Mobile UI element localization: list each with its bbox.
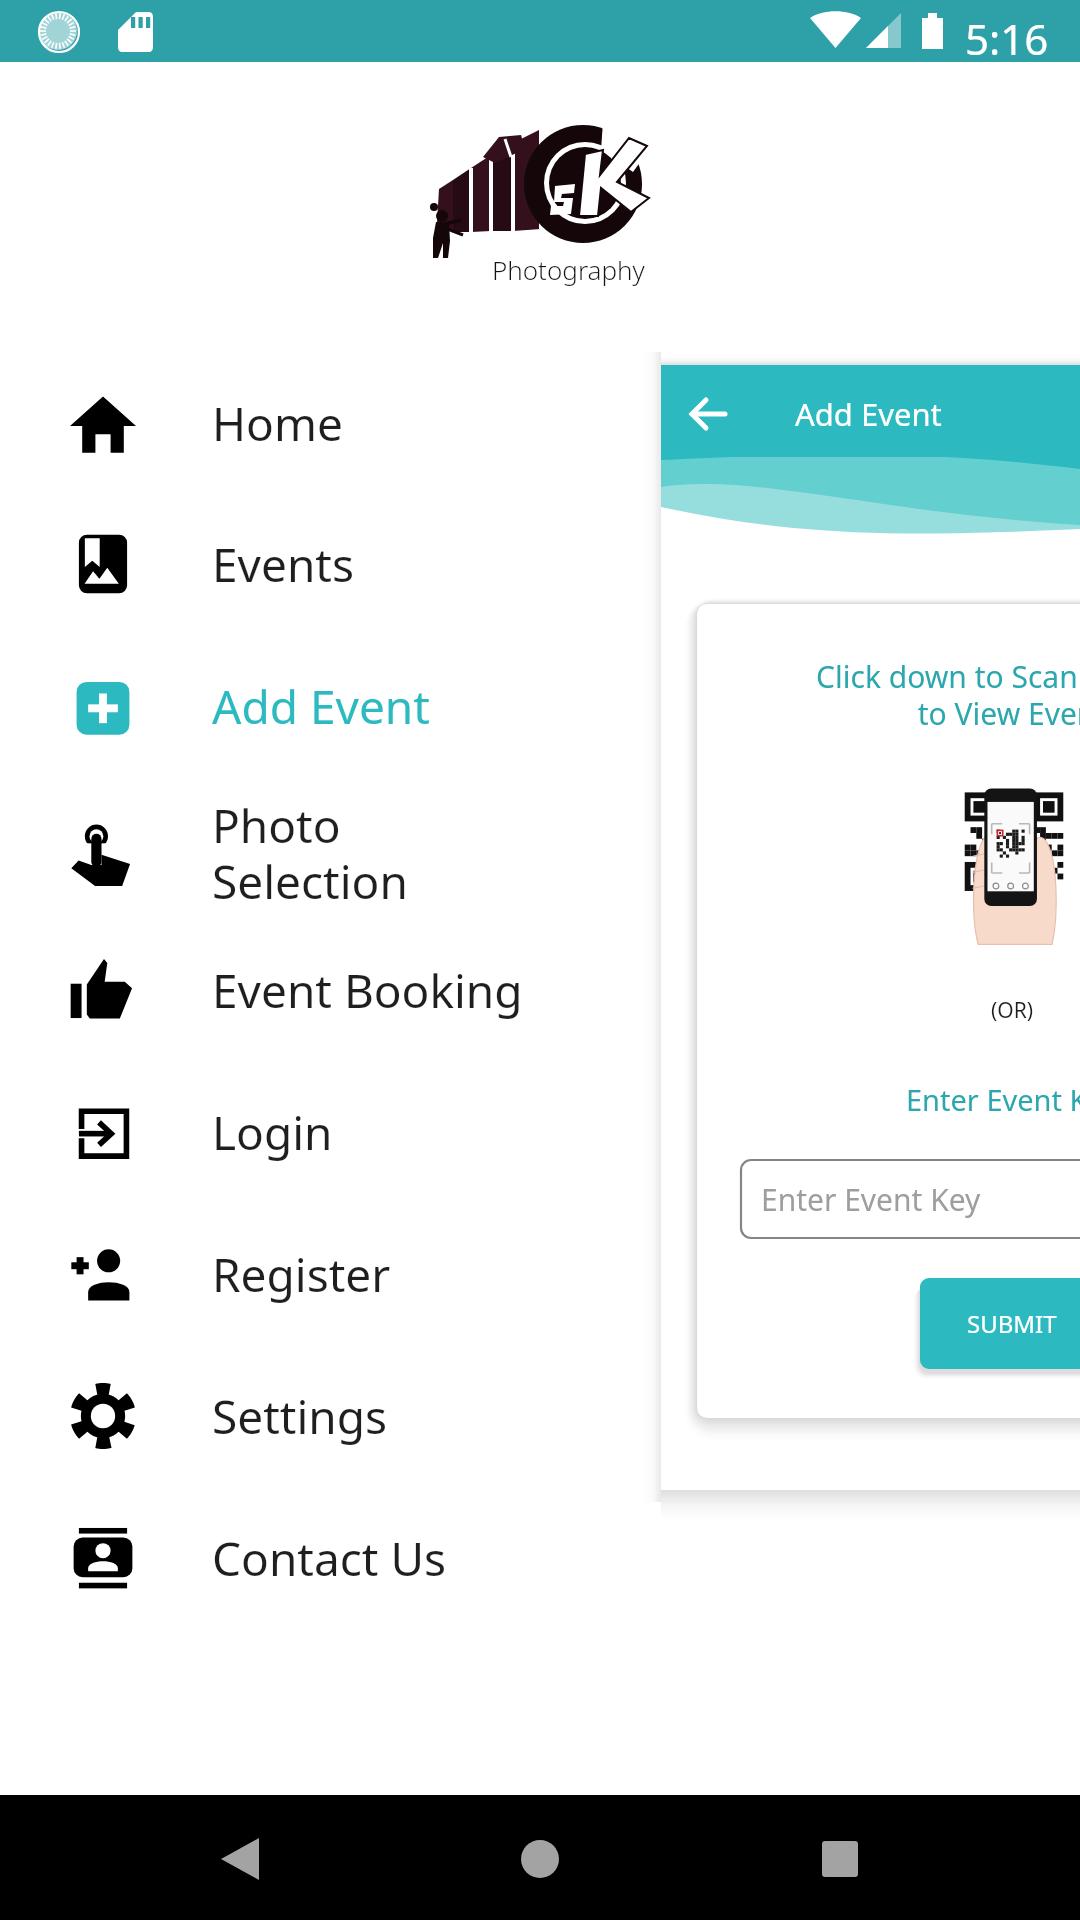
button[interactable]: Add Event xyxy=(0,644,661,768)
staticText: Contact Us xyxy=(212,1527,447,1590)
staticText: Login xyxy=(212,1101,333,1164)
staticText: Photo Selection xyxy=(212,794,408,912)
button[interactable]: Login xyxy=(0,1070,661,1194)
staticText: Event Booking xyxy=(212,959,523,1022)
staticText: Register xyxy=(212,1243,391,1306)
staticText: Home xyxy=(212,392,343,455)
staticText: Add Event xyxy=(795,393,942,435)
staticText: Events xyxy=(212,533,354,596)
staticText: Settings xyxy=(212,1385,388,1448)
staticText: Photography xyxy=(492,252,645,287)
button[interactable]: Event Booking xyxy=(0,928,661,1052)
staticText: 5:16 xyxy=(965,10,1049,67)
button[interactable]: Settings xyxy=(0,1354,661,1478)
staticText: SUBMIT xyxy=(967,1307,1057,1340)
staticText: Click down to Scan QR Code to View Event xyxy=(816,656,1080,734)
staticText: Enter Event Key xyxy=(906,1080,1080,1119)
button[interactable]: Home xyxy=(0,361,661,485)
button[interactable]: Contact Us xyxy=(0,1496,661,1620)
staticText: Enter Event Key xyxy=(761,1179,981,1220)
staticText: Add Event xyxy=(212,675,430,738)
button[interactable]: Back xyxy=(687,392,731,436)
button[interactable]: Register xyxy=(0,1212,661,1336)
button[interactable]: SUBMIT xyxy=(920,1278,1080,1369)
button[interactable]: Photo Selection xyxy=(0,791,661,915)
staticText: (OR) xyxy=(991,996,1034,1025)
button[interactable]: Enter Event Key xyxy=(741,1160,1080,1238)
button[interactable]: Events xyxy=(0,502,661,626)
